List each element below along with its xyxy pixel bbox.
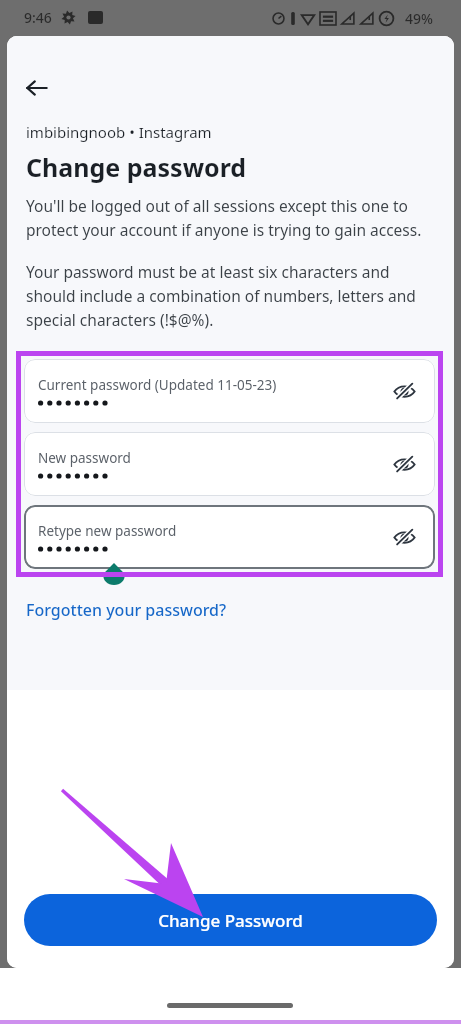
- staticText: Change password: [26, 150, 247, 184]
- button[interactable]: Current password (Updated 11-05-23): [24, 359, 435, 423]
- button[interactable]: Show password: [385, 445, 423, 483]
- button[interactable]: Retype new password: [24, 505, 435, 569]
- staticText: 9:46: [24, 8, 52, 27]
- button[interactable]: Forgotten your password?: [7, 595, 454, 629]
- staticText: Retype new password: [38, 522, 177, 540]
- staticText: New password: [38, 449, 131, 467]
- staticText: imbibingnoob • Instagram: [26, 122, 212, 142]
- button[interactable]: Change Password: [24, 894, 437, 946]
- button[interactable]: Show password: [385, 518, 423, 556]
- staticText: You'll be logged out of all sessions exc…: [26, 195, 432, 240]
- staticText: Change Password: [158, 909, 303, 932]
- staticText: Forgotten your password?: [26, 599, 227, 621]
- button[interactable]: Back: [15, 66, 59, 110]
- staticText: Your password must be at least six chara…: [26, 261, 432, 330]
- staticText: Current password (Updated 11-05-23): [38, 376, 277, 394]
- staticText: 49%: [405, 9, 433, 28]
- button[interactable]: Show password: [385, 372, 423, 410]
- button[interactable]: New password: [24, 432, 435, 496]
